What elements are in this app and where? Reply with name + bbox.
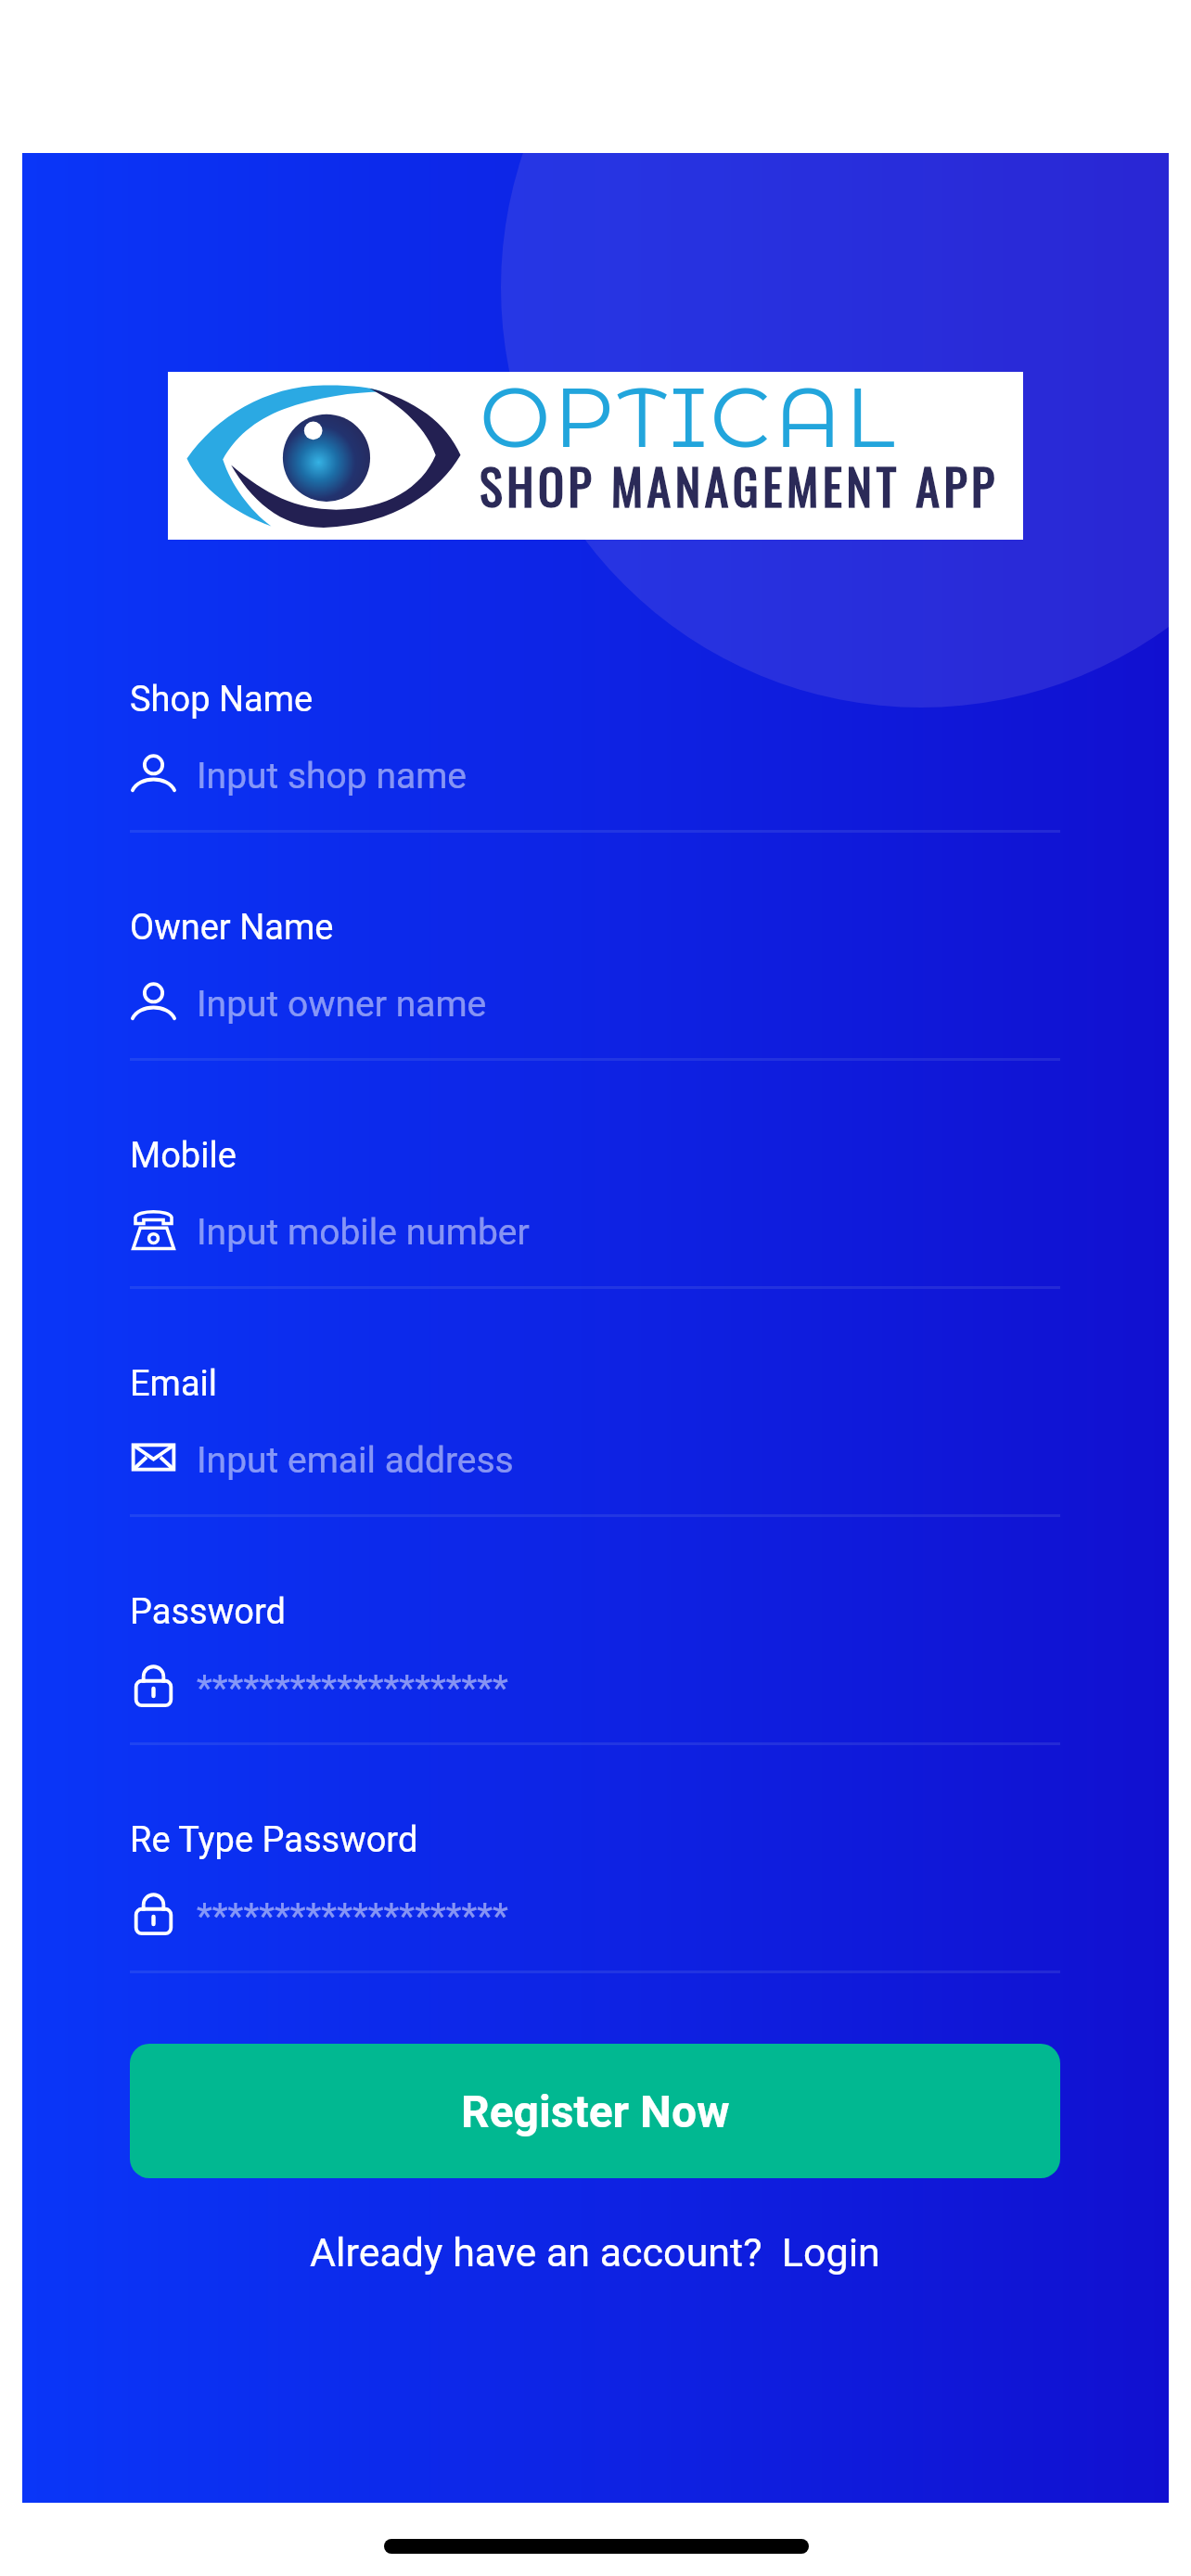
- staticText: Already have an account? Login: [310, 2229, 880, 2276]
- staticText: SHOP MANAGEMENT APP: [480, 450, 999, 521]
- staticText: ********************: [197, 1895, 508, 1938]
- staticText: Input email address: [197, 1439, 514, 1482]
- staticText: Input shop name: [197, 755, 467, 797]
- staticText: Shop Name: [130, 679, 314, 721]
- staticText: Input mobile number: [197, 1211, 530, 1254]
- staticText: Password: [130, 1591, 286, 1633]
- staticText: ********************: [197, 1667, 508, 1710]
- staticText: Re Type Password: [130, 1819, 418, 1861]
- button[interactable]: Already have an account? Login: [130, 2178, 1060, 2327]
- staticText: OPTICAL: [480, 365, 899, 468]
- staticText: Input owner name: [197, 983, 487, 1026]
- staticText: Owner Name: [130, 907, 334, 949]
- staticText: Mobile: [130, 1135, 237, 1177]
- staticText: Register Now: [461, 2085, 730, 2137]
- button[interactable]: Register Now: [130, 2044, 1060, 2178]
- staticText: Email: [130, 1363, 218, 1405]
